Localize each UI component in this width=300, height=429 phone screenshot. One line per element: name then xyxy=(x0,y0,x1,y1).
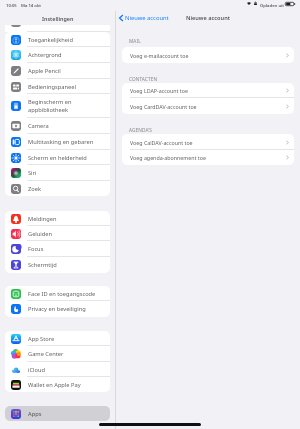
button[interactable]: Multitasking en gebaren xyxy=(5,134,110,150)
staticText: Focus xyxy=(28,245,44,253)
button[interactable]: Voeg CalDAV-account toe xyxy=(122,134,294,150)
staticText: Camera xyxy=(28,122,49,130)
staticText: Nieuwe account xyxy=(125,14,169,22)
button[interactable]: Bedieningspaneel xyxy=(5,79,110,94)
button[interactable]: Wallet en Apple Pay xyxy=(5,377,110,392)
button[interactable]: Camera xyxy=(5,118,110,134)
button[interactable]: Apple Pencil xyxy=(5,63,110,79)
button[interactable]: Game Center xyxy=(5,346,110,362)
button[interactable]: Siri xyxy=(5,165,110,181)
other: Wi-Fi xyxy=(247,2,251,5)
staticText: Scherm en helderheid xyxy=(28,154,87,162)
button[interactable]: Zoek xyxy=(5,181,110,196)
button[interactable]: Meldingen xyxy=(5,211,110,226)
staticText: Siri xyxy=(28,169,37,177)
staticText: Privacy en beveiliging xyxy=(28,305,86,313)
button[interactable]: Toegankelijkheid xyxy=(5,32,110,47)
button[interactable]: App Store xyxy=(5,331,110,346)
staticText: AGENDA'S xyxy=(129,127,153,133)
staticText: Game Center xyxy=(28,350,64,358)
staticText: Toegankelijkheid xyxy=(28,36,73,44)
staticText: Voeg CalDAV-account toe xyxy=(130,139,193,146)
button[interactable]: Voeg agenda-abonnement toe xyxy=(122,150,294,165)
staticText: Voeg CardDAV-account toe xyxy=(130,103,197,110)
button[interactable]: Beginscherm en xyxy=(5,94,110,118)
staticText: Voeg LDAP-account toe xyxy=(130,87,188,94)
staticText: Face ID en toegangscode xyxy=(28,290,96,298)
other: Battery xyxy=(285,2,295,6)
button[interactable]: Schermtijd xyxy=(5,257,110,273)
staticText: Zoek xyxy=(28,185,41,193)
staticText: Nieuwe account xyxy=(186,14,230,22)
staticText: Beginscherm en xyxy=(28,98,72,106)
staticText: Achtergrond xyxy=(28,51,62,59)
button[interactable]: Apps xyxy=(5,406,110,421)
button[interactable]: Voeg e-mailaccount toe xyxy=(122,47,294,63)
staticText: Ma 14 okt xyxy=(21,3,42,9)
staticText: Geluiden xyxy=(28,230,53,238)
button[interactable]: Voeg LDAP-account toe xyxy=(122,83,294,98)
button[interactable]: Geluiden xyxy=(5,226,110,241)
staticText: Schermtijd xyxy=(28,261,57,269)
staticText: 10:05 xyxy=(6,3,17,9)
button[interactable]: iCloud xyxy=(5,362,110,377)
button[interactable]: Scherm en helderheid xyxy=(5,150,110,165)
staticText: Multitasking en gebaren xyxy=(28,138,94,146)
button[interactable]: Privacy en beveiliging xyxy=(5,301,110,317)
button[interactable]: Voeg CardDAV-account toe xyxy=(122,98,294,114)
staticText: Apps xyxy=(28,410,42,418)
staticText: MAIL xyxy=(129,38,141,44)
staticText: CONTACTEN xyxy=(129,76,158,82)
staticText: Wallet en Apple Pay xyxy=(28,381,81,389)
staticText: appbibliotheek xyxy=(28,106,69,114)
staticText: iCloud xyxy=(28,366,45,374)
staticText: Meldingen xyxy=(28,215,57,223)
button[interactable]: Achtergrond xyxy=(5,47,110,63)
button[interactable]: Focus xyxy=(5,241,110,257)
button[interactable]: Face ID en toegangscode xyxy=(5,286,110,301)
other: Locked xyxy=(254,2,257,5)
staticText: Instellingen xyxy=(42,15,74,22)
staticText: App Store xyxy=(28,335,55,343)
staticText: Bedieningspaneel xyxy=(28,83,76,91)
staticText: Apple Pencil xyxy=(28,67,61,75)
staticText: Opladen uit xyxy=(260,3,284,9)
button[interactable]: Nieuwe account xyxy=(116,14,169,22)
staticText: Voeg e-mailaccount toe xyxy=(130,52,189,59)
staticText: Voeg agenda-abonnement toe xyxy=(130,154,206,161)
